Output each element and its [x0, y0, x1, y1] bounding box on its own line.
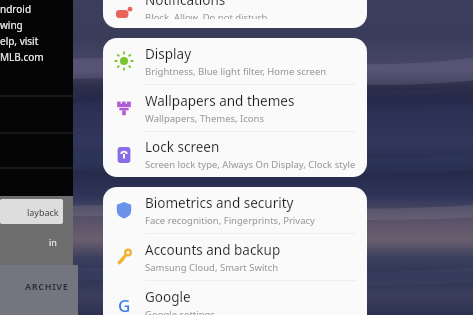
button[interactable]: in [0, 230, 63, 254]
button[interactable]: layback [0, 199, 63, 224]
other: Accounts and backup [114, 247, 134, 267]
staticText: ndroid [0, 2, 32, 16]
staticText: Samsung Cloud, Smart Switch [145, 261, 279, 274]
staticText: Google [145, 288, 191, 306]
staticText: Biometrics and security [145, 194, 294, 212]
button[interactable] [103, 0, 367, 28]
staticText: G [118, 294, 131, 314]
staticText: Display [145, 45, 192, 63]
other: Biometrics and security [114, 200, 134, 220]
button[interactable]: Display [103, 38, 367, 84]
other: Notifications [114, 4, 134, 24]
button[interactable]: ARCHIVE [0, 272, 78, 300]
staticText: elp, visit [0, 34, 39, 48]
button[interactable]: Lock screen [103, 132, 367, 177]
button[interactable]: Accounts and backup [103, 234, 367, 280]
staticText: Google settings [145, 308, 216, 315]
staticText: Accounts and backup [145, 241, 281, 259]
staticText: Notifications [145, 0, 226, 9]
button[interactable]: Biometrics and security [103, 187, 367, 233]
staticText: wing [0, 18, 23, 32]
staticText: Wallpapers and themes [145, 92, 295, 110]
button[interactable]: Wallpapers and themes [103, 85, 367, 131]
other: Wallpapers and themes [114, 98, 134, 118]
other: Lock screen [114, 145, 134, 165]
staticText: Wallpapers, Themes, Icons [145, 112, 265, 125]
staticText: Brightness, Blue light filter, Home scre… [145, 65, 327, 78]
staticText: in [49, 236, 57, 248]
other: Display [114, 51, 134, 71]
staticText: layback [27, 206, 59, 218]
other: Google [114, 294, 134, 314]
button[interactable]: Notifications [103, 0, 367, 28]
button[interactable]: Google [103, 281, 367, 315]
staticText: ARCHIVE [25, 280, 69, 292]
staticText: Screen lock type, Always On Display, Clo… [145, 158, 356, 171]
staticText: MLB.com [0, 50, 44, 64]
staticText: Lock screen [145, 138, 220, 156]
staticText: Block, Allow, Do not disturb [145, 11, 268, 19]
staticText: Face recognition, Fingerprints, Privacy [145, 214, 315, 227]
